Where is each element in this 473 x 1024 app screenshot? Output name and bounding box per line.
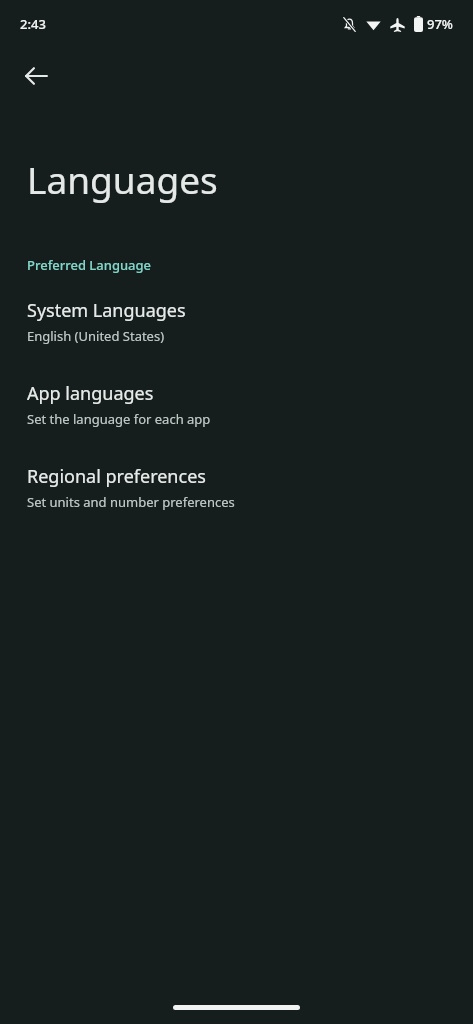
staticText: 2:43 bbox=[20, 15, 46, 33]
staticText: English (United States) bbox=[27, 327, 165, 345]
staticText: App languages bbox=[27, 381, 154, 406]
button[interactable]: Back bbox=[8, 48, 64, 104]
button[interactable]: System Languages bbox=[0, 296, 473, 347]
staticText: Set the language for each app bbox=[27, 410, 211, 428]
staticText: Regional preferences bbox=[27, 464, 206, 489]
staticText: 97% bbox=[427, 15, 453, 33]
staticText: Set units and number preferences bbox=[27, 493, 235, 511]
button[interactable]: App languages bbox=[0, 379, 473, 430]
staticText: Languages bbox=[27, 154, 218, 204]
button[interactable]: Regional preferences bbox=[0, 462, 473, 513]
staticText: Preferred Language bbox=[27, 256, 152, 274]
staticText: System Languages bbox=[27, 298, 186, 323]
